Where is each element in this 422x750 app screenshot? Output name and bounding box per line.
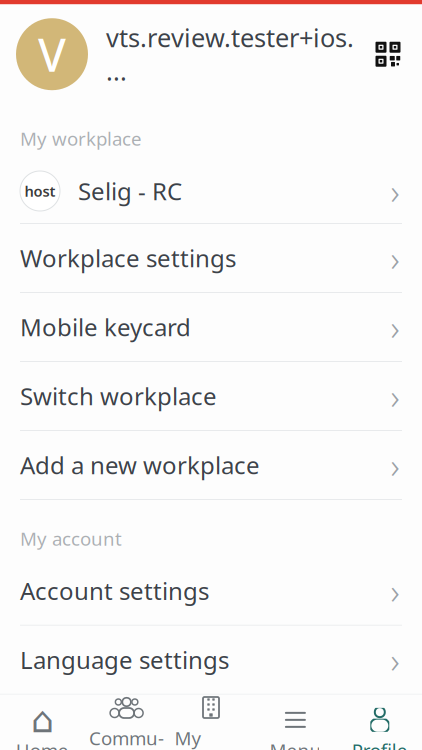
- staticText: Add a new workplace: [20, 449, 260, 481]
- button[interactable]: My Building: [169, 682, 253, 750]
- staticText: Language settings: [20, 644, 229, 676]
- button[interactable]: Add a new workplace: [0, 431, 422, 499]
- staticText: Switch workplace: [20, 380, 217, 412]
- staticText: ›: [390, 637, 399, 683]
- staticText: ›: [390, 235, 399, 281]
- staticText: Community: [89, 725, 164, 750]
- staticText: Account settings: [20, 575, 209, 607]
- staticText: host: [24, 181, 55, 201]
- button[interactable]: ⌂: [0, 695, 84, 750]
- staticText: ›: [390, 568, 399, 614]
- staticText: Home: [16, 738, 69, 750]
- staticText: Workplace settings: [20, 242, 236, 274]
- staticText: Mobile keycard: [20, 311, 191, 343]
- button[interactable]: Mobile keycard: [0, 293, 422, 361]
- staticText: My workplace: [20, 126, 142, 151]
- staticText: ⌂: [31, 699, 54, 740]
- button[interactable]: Workplace settings: [0, 224, 422, 292]
- staticText: vts.review.tester+ios....: [106, 21, 354, 88]
- staticText: My account: [20, 526, 122, 551]
- button[interactable]: Show QR code: [366, 32, 410, 76]
- button[interactable]: Community: [84, 682, 169, 750]
- staticText: ›: [390, 373, 399, 419]
- staticText: Profile: [352, 738, 408, 750]
- staticText: ›: [390, 442, 399, 488]
- button[interactable]: Menu: [253, 695, 338, 750]
- staticText: Menu: [269, 738, 321, 750]
- staticText: Selig - RC: [78, 175, 182, 207]
- button[interactable]: Language settings: [0, 626, 422, 694]
- button[interactable]: Switch workplace: [0, 362, 422, 430]
- staticText: ›: [390, 168, 399, 214]
- staticText: ›: [390, 304, 399, 350]
- button[interactable]: host: [0, 159, 422, 223]
- staticText: V: [38, 24, 66, 84]
- button[interactable]: Account settings: [0, 557, 422, 625]
- staticText: My Building: [174, 725, 247, 750]
- button[interactable]: Profile: [338, 695, 422, 750]
